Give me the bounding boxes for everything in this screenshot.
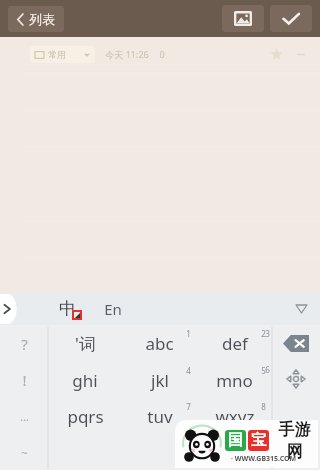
- staticText: 7: [186, 401, 191, 412]
- staticText: wxyz: [215, 405, 255, 428]
- staticText: 今天 11:26: [105, 48, 149, 60]
- button[interactable]: 列表: [8, 6, 64, 32]
- button[interactable]: ~: [0, 434, 48, 470]
- staticText: 国: [228, 431, 243, 450]
- button[interactable]: Favourite: [266, 44, 286, 64]
- staticText: 8: [261, 401, 266, 412]
- button[interactable]: mno: [197, 362, 272, 398]
- staticText: 手游网: [271, 420, 318, 460]
- button[interactable]: …: [0, 398, 48, 434]
- button[interactable]: En: [104, 293, 154, 325]
- staticText: !: [22, 370, 27, 390]
- button[interactable]: tuv: [122, 398, 197, 434]
- staticText: 5: [261, 365, 266, 376]
- staticText: 0: [159, 48, 165, 60]
- button[interactable]: def: [197, 325, 272, 362]
- button[interactable]: Move cursor: [272, 361, 320, 397]
- staticText: def: [222, 332, 248, 355]
- button[interactable]: 常用: [30, 46, 95, 63]
- button[interactable]: Backspace: [272, 325, 320, 361]
- staticText: 中: [59, 298, 76, 319]
- button[interactable]: abc: [122, 325, 197, 362]
- staticText: 3: [265, 328, 270, 339]
- staticText: 常用: [48, 49, 66, 60]
- staticText: jkl: [151, 369, 169, 392]
- button[interactable]: ?: [0, 325, 48, 362]
- button[interactable]: !: [0, 362, 48, 398]
- button[interactable]: jkl: [122, 362, 197, 398]
- button[interactable]: Done: [270, 5, 312, 32]
- staticText: 4: [186, 365, 191, 376]
- staticText: 2: [261, 328, 266, 339]
- staticText: '词: [75, 332, 96, 355]
- button[interactable]: Expand: [0, 294, 17, 324]
- staticText: …: [20, 409, 29, 424]
- staticText: En: [104, 299, 122, 319]
- staticText: ?: [21, 334, 28, 354]
- staticText: 1: [186, 328, 191, 339]
- staticText: mno: [216, 369, 253, 392]
- staticText: 宝: [251, 431, 266, 450]
- button[interactable]: ghi: [48, 362, 122, 398]
- button[interactable]: pqrs: [48, 398, 122, 434]
- staticText: 列表: [29, 11, 55, 27]
- button[interactable]: Insert image: [222, 5, 264, 32]
- button[interactable]: Hide keyboard: [290, 298, 312, 320]
- staticText: pqrs: [67, 405, 104, 428]
- staticText: abc: [145, 332, 174, 355]
- staticText: ghi: [72, 369, 98, 392]
- staticText: ~: [21, 445, 28, 460]
- button[interactable]: '词: [48, 325, 122, 362]
- staticText: · WWW.GB315.COM ·: [231, 454, 300, 464]
- staticText: 6: [265, 364, 270, 375]
- button[interactable]: 中: [50, 293, 90, 325]
- staticText: tuv: [147, 405, 173, 428]
- button[interactable]: More options: [292, 45, 310, 63]
- button[interactable]: wxyz: [197, 398, 272, 434]
